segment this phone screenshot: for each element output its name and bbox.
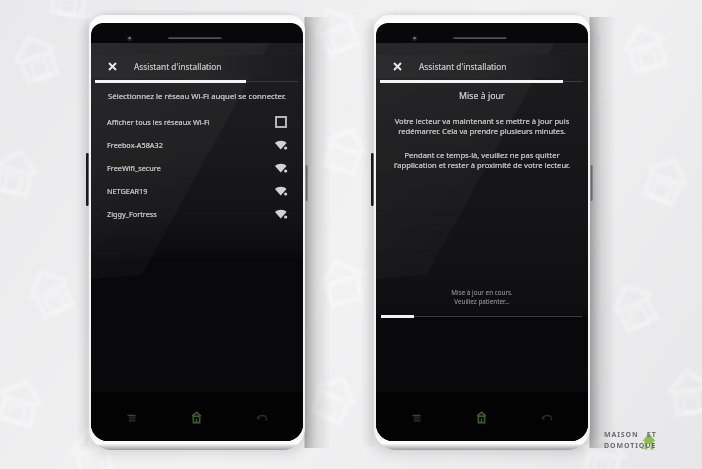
staticText: DOMOTIQUE (604, 441, 657, 450)
button[interactable]: NETGEAR19 (91, 179, 303, 202)
button[interactable]: Fermer (376, 55, 419, 78)
staticText: Mise à jour (459, 90, 505, 102)
button[interactable]: Freebox-A58A32 (91, 133, 303, 156)
button[interactable]: Menu (116, 403, 146, 431)
staticText: Mise à jour en cours. Veuillez patienter… (376, 288, 588, 306)
button[interactable]: FreeWifi_secure (91, 156, 303, 179)
staticText: Assistant d'installation (134, 61, 222, 72)
staticText: NETGEAR19 (107, 186, 148, 196)
button[interactable]: Retour (246, 403, 276, 431)
staticText: Votre lecteur va maintenant se mettre à … (376, 116, 588, 136)
button[interactable]: Accueil (466, 403, 496, 431)
button[interactable]: Accueil (181, 403, 211, 431)
button[interactable]: Afficher tous les réseaux Wi-Fi (91, 110, 303, 133)
button[interactable]: Retour (531, 403, 561, 431)
staticText: Pendant ce temps-là, veuillez ne pas qui… (376, 150, 588, 170)
staticText: Ziggy_Fortress (107, 209, 157, 219)
staticText: Sélectionnez le réseau Wi-Fi auquel se c… (108, 91, 287, 102)
button[interactable]: Fermer (91, 55, 134, 78)
staticText: Assistant d'installation (419, 61, 507, 72)
staticText: Afficher tous les réseaux Wi-Fi (107, 117, 210, 127)
button[interactable]: Menu (401, 403, 431, 431)
staticText: FreeWifi_secure (107, 163, 161, 173)
staticText: MAISON ET (604, 430, 657, 440)
button[interactable]: Ziggy_Fortress (91, 202, 303, 225)
staticText: Freebox-A58A32 (107, 140, 163, 150)
